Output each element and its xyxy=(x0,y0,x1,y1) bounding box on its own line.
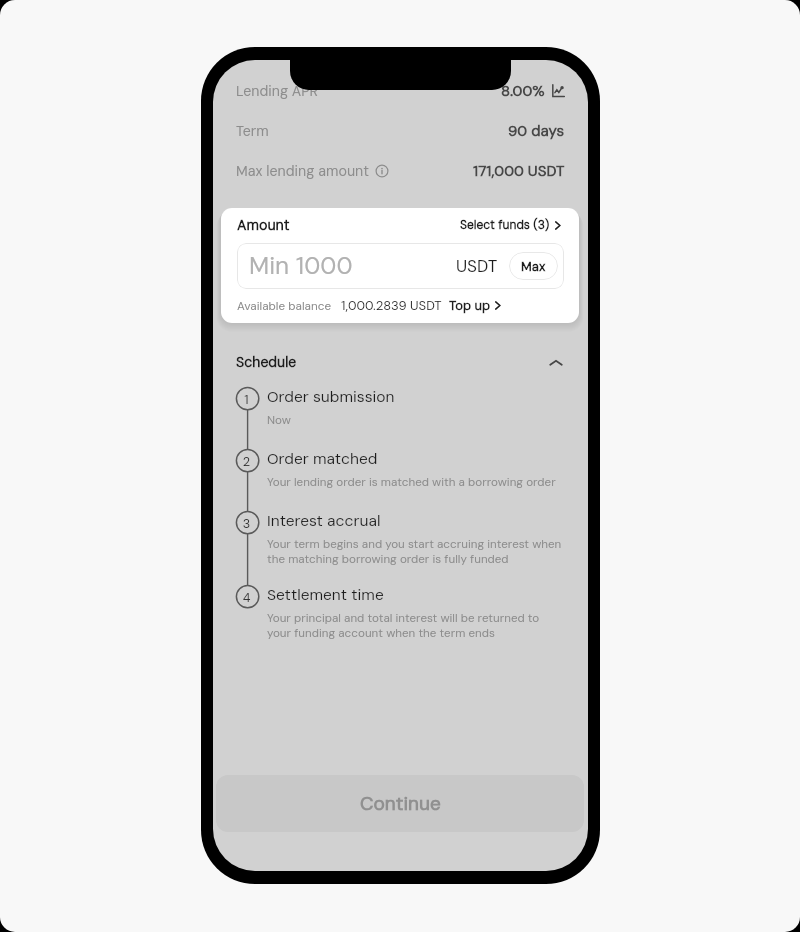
button[interactable]: Top up xyxy=(449,296,502,314)
staticText: Settlement time xyxy=(267,585,384,605)
button[interactable]: Continue xyxy=(216,775,584,832)
staticText: USDT xyxy=(456,255,498,277)
staticText: Term xyxy=(236,122,269,140)
staticText: 1,000.2839 USDT xyxy=(341,297,442,314)
staticText: Available balance xyxy=(237,298,332,313)
staticText: Max xyxy=(521,258,546,275)
other: Collapse schedule xyxy=(547,354,565,372)
staticText: Now xyxy=(267,412,291,427)
staticText: Your lending order is matched with a bor… xyxy=(267,474,556,489)
staticText: 3 xyxy=(235,516,258,532)
staticText: Continue xyxy=(360,791,441,816)
button[interactable]: Schedule xyxy=(236,351,565,373)
staticText: 90 days xyxy=(508,121,565,141)
staticText: 4 xyxy=(235,590,258,606)
staticText: 1 xyxy=(235,392,258,408)
button[interactable]: Select funds (3) xyxy=(460,214,562,236)
button[interactable]: Max xyxy=(509,252,558,280)
button[interactable]: Min 1000 xyxy=(237,243,564,289)
staticText: Lending APR xyxy=(236,82,319,100)
staticText: Schedule xyxy=(236,353,297,371)
staticText: Order matched xyxy=(267,449,378,469)
staticText: 2 xyxy=(235,454,258,470)
staticText: Min 1000 xyxy=(249,250,353,282)
staticText: Your principal and total interest will b… xyxy=(267,610,565,641)
staticText: Order submission xyxy=(267,387,395,407)
staticText: Top up xyxy=(449,297,491,314)
staticText: 171,000 USDT xyxy=(473,161,565,181)
staticText: Max lending amount xyxy=(236,162,370,180)
staticText: Interest accrual xyxy=(267,511,381,531)
staticText: Select funds (3) xyxy=(460,217,550,233)
staticText: 8.00% xyxy=(501,81,545,101)
staticText: Amount xyxy=(237,216,290,234)
staticText: Your term begins and you start accruing … xyxy=(267,536,565,567)
